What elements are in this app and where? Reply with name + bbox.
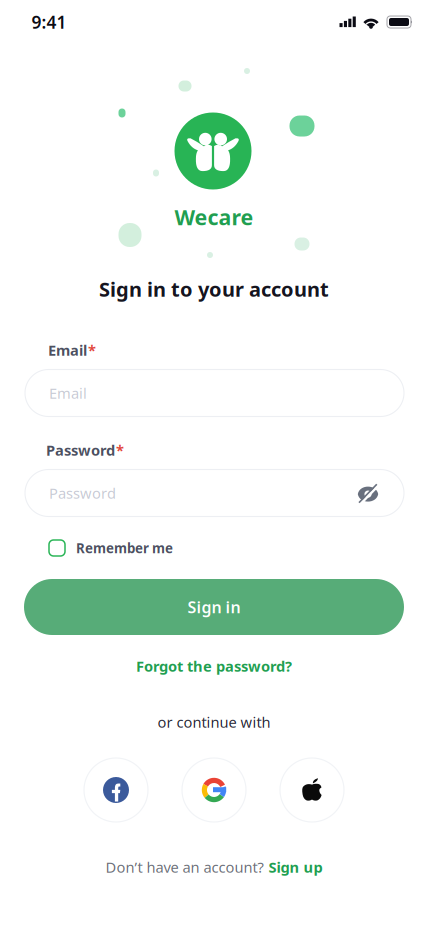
staticText: Email (49, 383, 87, 403)
staticText: Email (48, 340, 87, 360)
staticText: Remember me (76, 539, 173, 557)
staticText: Sign up (268, 857, 322, 877)
staticText: * (88, 340, 96, 360)
staticText: Sign in (187, 596, 240, 618)
button[interactable]: Continue with Facebook (84, 758, 148, 822)
staticText: Password (49, 483, 116, 503)
staticText: Don’t have an account? (105, 857, 263, 877)
staticText: Sign in to your account (99, 276, 329, 302)
button[interactable]: Sign up (268, 857, 322, 877)
staticText: Wecare (174, 203, 253, 231)
button[interactable]: Continue with Google (182, 758, 246, 822)
button[interactable]: Continue with Apple (280, 758, 344, 822)
staticText: Forgot the password? (136, 656, 292, 676)
button[interactable]: Sign in (24, 579, 404, 635)
button[interactable]: Forgot the password? (136, 656, 292, 676)
button[interactable]: Remember me (49, 539, 173, 557)
staticText: Password (46, 440, 115, 460)
button[interactable]: Show password (354, 479, 382, 507)
staticText: * (116, 440, 124, 460)
staticText: 9:41 (31, 10, 66, 33)
staticText: or continue with (157, 712, 270, 732)
